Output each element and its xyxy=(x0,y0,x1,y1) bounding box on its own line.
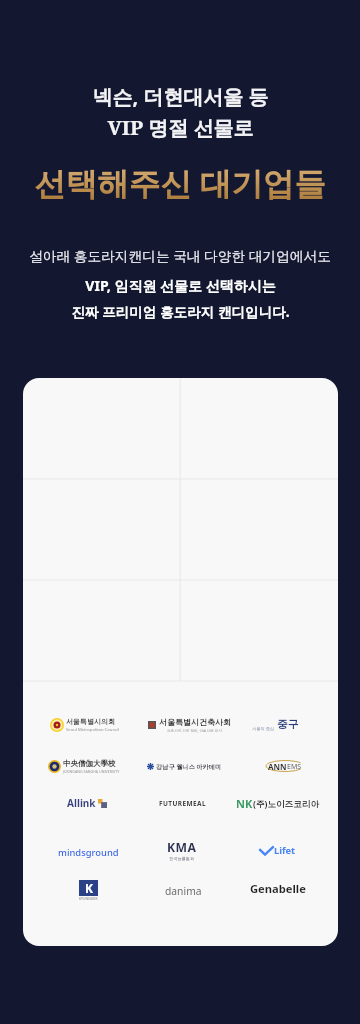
staticText: 서울특별시의회 xyxy=(66,717,115,726)
button[interactable]: KMA 한국능률협회 xyxy=(127,834,237,866)
staticText: 중구 xyxy=(277,718,299,732)
staticText: 中央僧伽大學校 xyxy=(63,759,116,768)
staticText: NK xyxy=(236,796,253,811)
staticText: 선택해주신 대기업들 xyxy=(34,161,326,204)
button[interactable]: 강남구 웰니스 아카데미 xyxy=(129,750,239,782)
staticText: K xyxy=(85,880,93,896)
staticText: VIP, 임직원 선물로 선택하시는 xyxy=(85,276,276,295)
staticText: ANN xyxy=(268,761,287,772)
button[interactable]: Allink xyxy=(32,787,142,819)
staticText: KYUNGBOK xyxy=(79,896,98,901)
staticText: 강남구 웰니스 아카데미 xyxy=(156,762,222,770)
button[interactable]: 중앙승가대학교 xyxy=(29,750,139,782)
staticText: FUTUREMEAL xyxy=(159,799,206,808)
staticText: VIP 명절 선물로 xyxy=(107,113,254,141)
staticText: Lifet xyxy=(274,844,296,857)
button[interactable]: 경복대학교 xyxy=(33,874,143,906)
button[interactable]: 제품 이미지 1 xyxy=(23,378,180,479)
button[interactable]: 칸엠스 xyxy=(230,750,338,782)
button[interactable]: 서울특별시의회 xyxy=(30,709,140,741)
button[interactable]: FUTUREMEAL xyxy=(127,787,237,819)
button[interactable]: 노이즈코리아 xyxy=(222,787,332,819)
button[interactable]: 서울특별시건축사회 xyxy=(134,709,244,741)
button[interactable]: Genabelle xyxy=(223,872,333,904)
staticText: 건축사의 가치 창조, 아름다운 도시 xyxy=(167,728,223,733)
staticText: 서울의 중심 xyxy=(252,726,275,732)
button[interactable]: 서울 중구 xyxy=(220,709,330,741)
button[interactable]: Lifet xyxy=(222,834,332,866)
staticText: EMS xyxy=(287,762,302,772)
staticText: 서울특별시건축사회 xyxy=(159,717,231,727)
staticText: mindsground xyxy=(58,846,119,859)
staticText: Genabelle xyxy=(250,881,306,896)
staticText: 넥슨, 더현대서울 등 xyxy=(92,83,269,110)
staticText: JOONGANG SANGHA UNIVERSITY xyxy=(63,769,120,774)
staticText: Seoul Metropolitan Council xyxy=(66,727,120,733)
staticText: danima xyxy=(165,884,202,898)
staticText: 한국능률협회 xyxy=(169,856,195,861)
staticText: Allink xyxy=(67,796,96,810)
button[interactable]: danima xyxy=(128,875,238,907)
staticText: 설아래 홍도라지캔디는 국내 다양한 대기업에서도 xyxy=(29,246,331,265)
button[interactable]: mindsground xyxy=(33,836,143,868)
staticText: KMA xyxy=(167,839,197,856)
staticText: (주)노이즈코리아 xyxy=(253,798,319,810)
staticText: 진짜 프리미엄 홍도라지 캔디입니다. xyxy=(71,302,290,321)
button[interactable]: 제품 이미지 2 xyxy=(180,378,338,479)
